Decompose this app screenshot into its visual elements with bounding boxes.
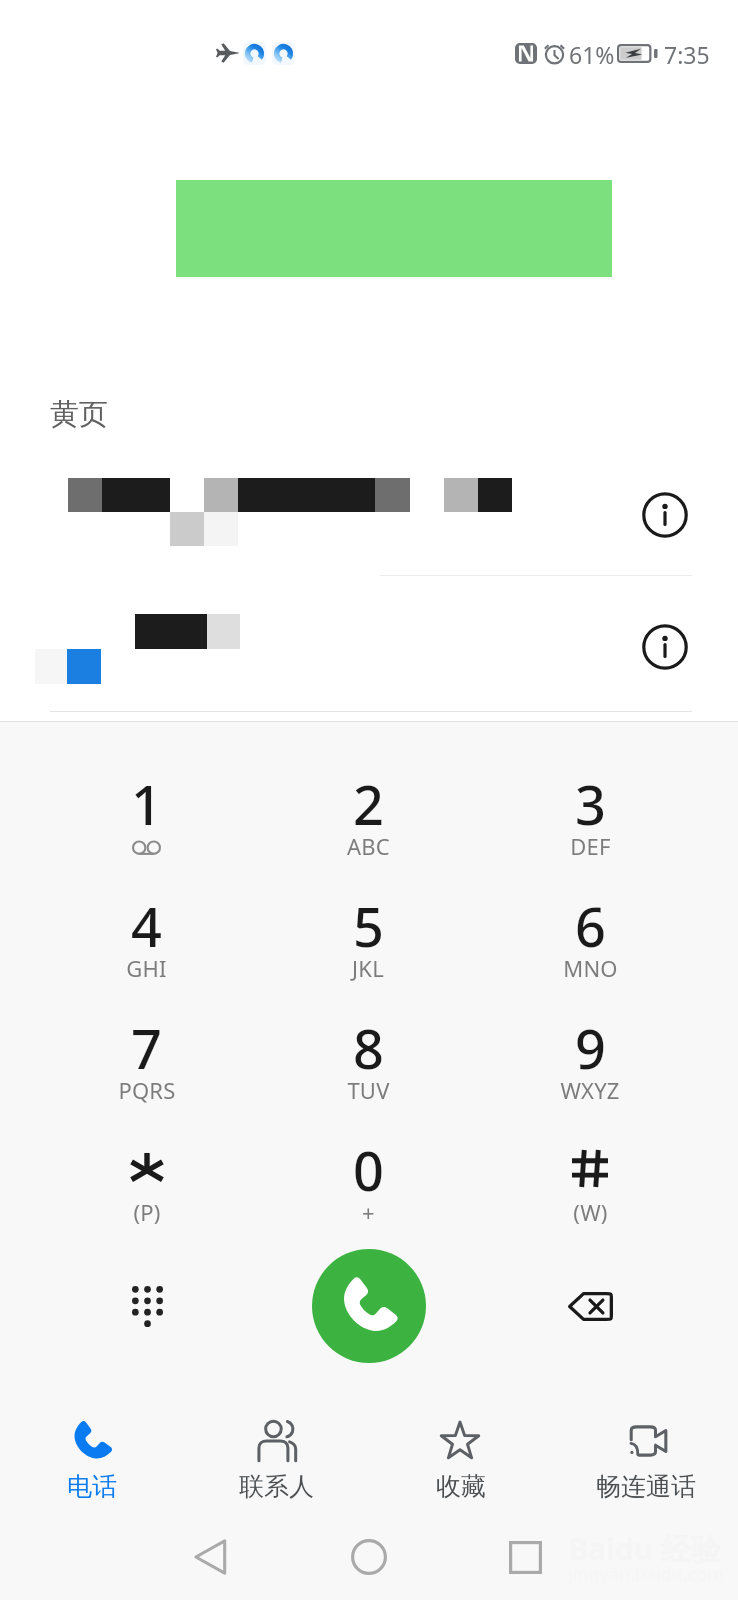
staticText: 2 [353,767,384,841]
staticText: 黄页 [50,396,108,433]
staticText: PQRS [118,1075,176,1105]
staticText: WXYZ [560,1075,620,1105]
staticText: 0 [353,1133,384,1207]
button[interactable]: 9 [479,1009,701,1131]
staticText: 8 [353,1011,384,1085]
staticText: 61% [569,39,615,70]
button[interactable]: 4 [36,887,257,1009]
button[interactable]: 5 [257,887,479,1009]
button[interactable]: Recents [490,1522,560,1592]
staticText: 联系人 [239,1471,314,1502]
staticText: 电话 [67,1471,117,1502]
staticText: 收藏 [436,1471,486,1502]
staticText: 7:35 [664,39,710,70]
button[interactable]: Info [0,575,738,711]
button[interactable]: Back [176,1522,246,1592]
button[interactable]: (P) [36,1131,257,1253]
button[interactable]: Info [0,455,738,575]
button[interactable]: Info [635,485,695,545]
button[interactable]: 1 [36,765,257,887]
staticText: 4 [131,889,162,963]
button[interactable]: 收藏 [368,1405,553,1517]
button[interactable]: 电话 [0,1405,184,1517]
button[interactable]: Keypad [107,1266,187,1346]
staticText: 畅连通话 [596,1471,696,1502]
button[interactable]: 6 [479,887,701,1009]
staticText: 3 [575,767,606,841]
staticText: 1 [131,767,162,841]
button[interactable]: 8 [257,1009,479,1131]
button[interactable]: (W) [479,1131,701,1253]
staticText: TUV [347,1075,390,1105]
button[interactable]: 0 [257,1131,479,1253]
staticText: (P) [133,1197,161,1227]
staticText: 9 [575,1011,606,1085]
button[interactable]: 联系人 [184,1405,368,1517]
staticText: DEF [570,831,611,861]
staticText: GHI [126,953,167,983]
button[interactable]: 畅连通话 [553,1405,738,1517]
button[interactable]: Call [312,1249,426,1363]
staticText: MNO [563,953,618,983]
staticText: ABC [347,831,390,861]
button[interactable]: Home [334,1522,404,1592]
button[interactable]: 2 [257,765,479,887]
button[interactable]: 7 [36,1009,257,1131]
button[interactable]: Delete [550,1266,630,1346]
staticText: 7 [131,1011,162,1085]
button[interactable]: Info [635,617,695,677]
button[interactable]: 3 [479,765,701,887]
staticText: (W) [573,1197,608,1227]
staticText: 6 [575,889,606,963]
staticText: + [362,1197,375,1227]
staticText: JKL [352,953,384,983]
staticText: 5 [353,889,384,963]
